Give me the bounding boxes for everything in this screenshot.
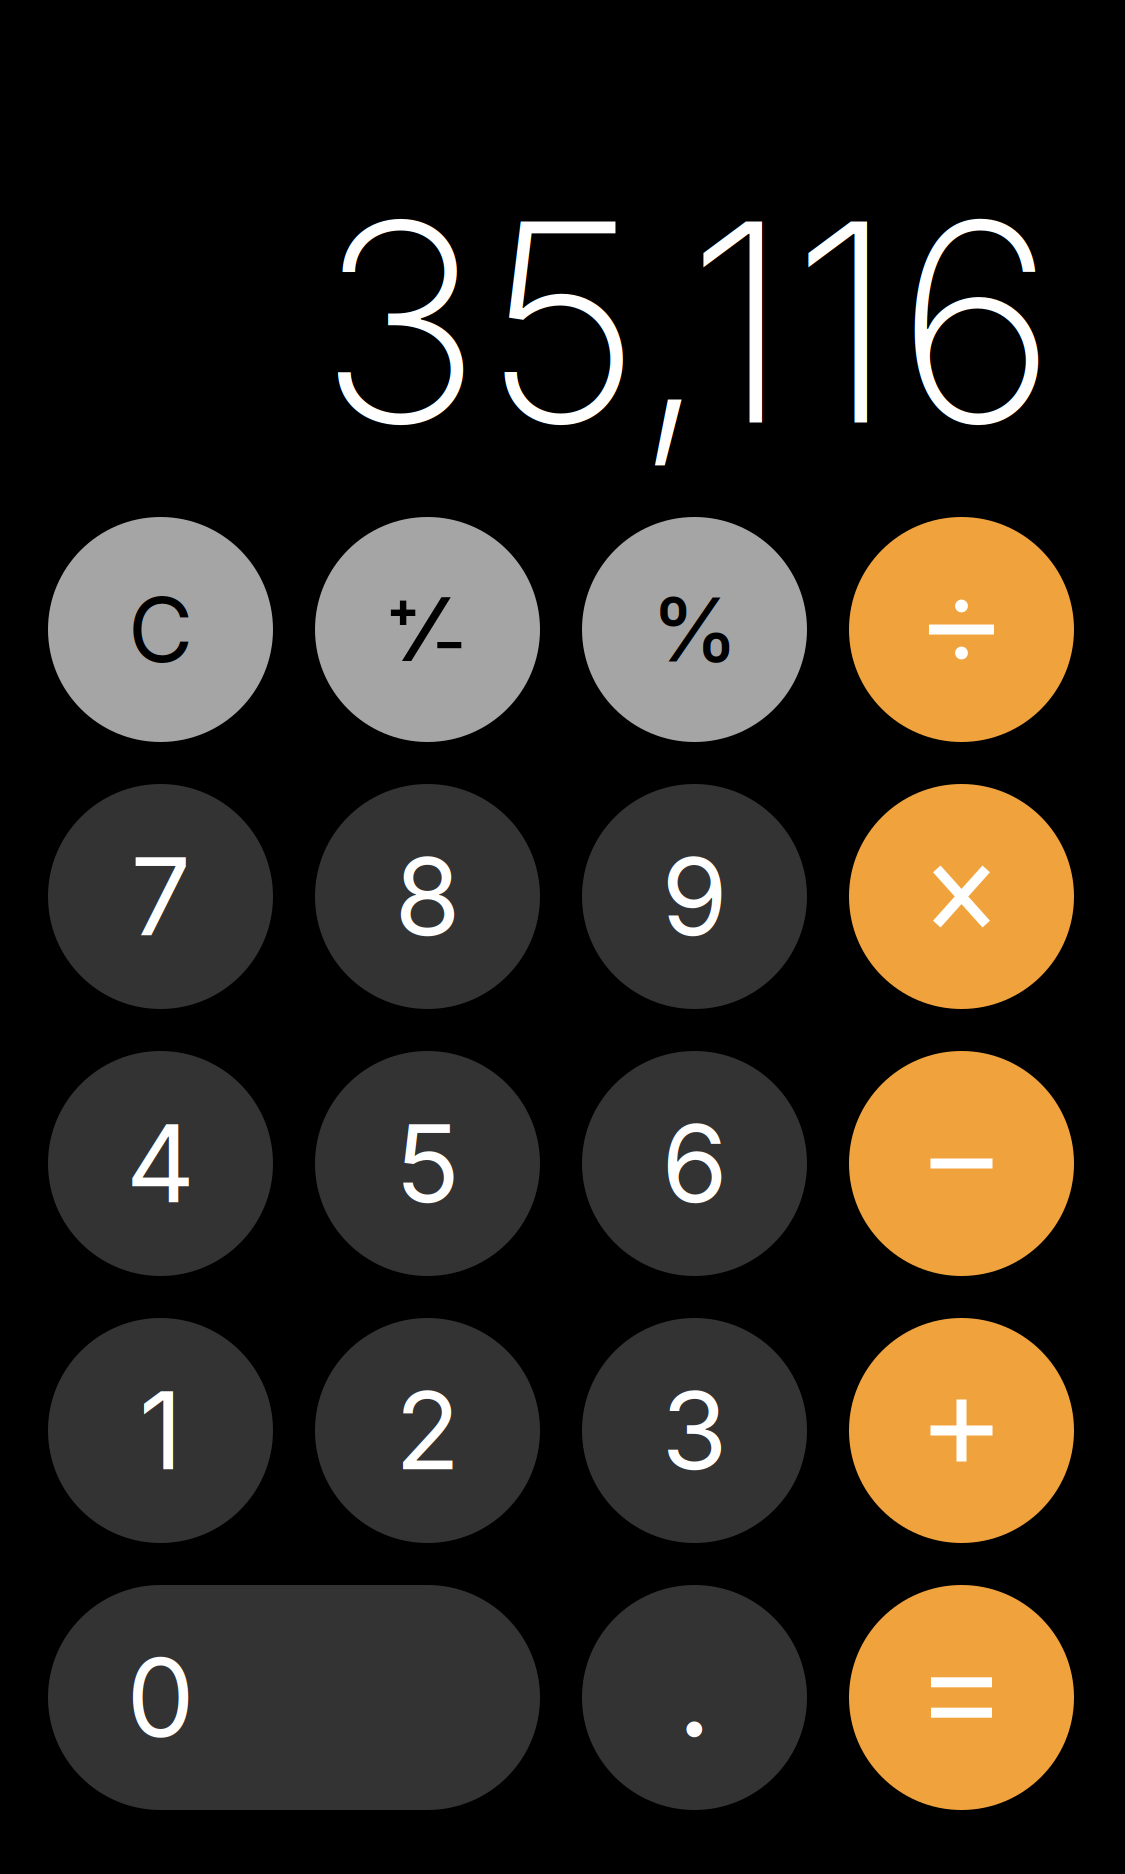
button[interactable]: Add bbox=[849, 1318, 1074, 1543]
button[interactable]: C bbox=[48, 517, 273, 742]
button[interactable]: Multiply bbox=[849, 784, 1074, 1009]
button[interactable]: 8 bbox=[315, 784, 540, 1009]
staticText: 35,116 bbox=[318, 155, 1057, 489]
staticText: C bbox=[128, 575, 193, 684]
staticText: 5 bbox=[395, 1099, 460, 1228]
button[interactable]: 0 bbox=[48, 1585, 540, 1810]
button[interactable]: Subtract bbox=[849, 1051, 1074, 1276]
button[interactable]: Equals bbox=[849, 1585, 1074, 1810]
staticText: 7 bbox=[130, 832, 190, 961]
button[interactable]: 3 bbox=[582, 1318, 807, 1543]
staticText: 6 bbox=[661, 1099, 727, 1228]
button[interactable]: 2 bbox=[315, 1318, 540, 1543]
button[interactable]: Toggle sign bbox=[315, 517, 540, 742]
button[interactable]: 4 bbox=[48, 1051, 273, 1276]
staticText: 3 bbox=[661, 1366, 727, 1495]
button[interactable]: % bbox=[582, 517, 807, 742]
button[interactable]: 5 bbox=[315, 1051, 540, 1276]
staticText: 4 bbox=[126, 1099, 195, 1228]
button[interactable]: Divide bbox=[849, 517, 1074, 742]
staticText: 2 bbox=[395, 1366, 460, 1495]
staticText: 1 bbox=[139, 1366, 182, 1495]
staticText: 8 bbox=[394, 832, 460, 961]
button[interactable]: . bbox=[582, 1585, 807, 1810]
button[interactable]: 7 bbox=[48, 784, 273, 1009]
staticText: 0 bbox=[126, 1632, 194, 1763]
staticText: . bbox=[677, 1620, 712, 1765]
button[interactable]: 9 bbox=[582, 784, 807, 1009]
button[interactable]: 6 bbox=[582, 1051, 807, 1276]
button[interactable]: 1 bbox=[48, 1318, 273, 1543]
staticText: 9 bbox=[661, 832, 727, 961]
staticText: % bbox=[651, 576, 738, 683]
